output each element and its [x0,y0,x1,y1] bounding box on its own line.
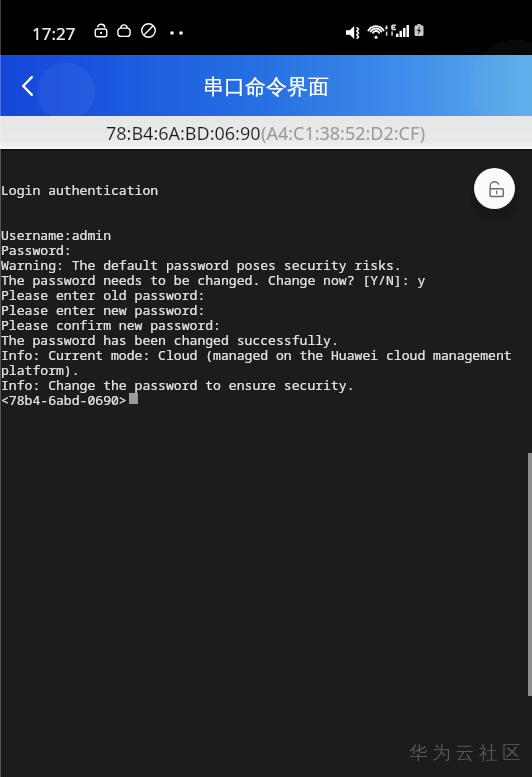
staticText: 17:27 [32,22,76,45]
button[interactable]: Back [4,62,52,110]
staticText: 串口命令界面 [203,74,329,100]
button[interactable]: Unlock [474,168,515,209]
staticText: (A4:C1:38:52:D2:CF) [261,121,426,146]
staticText: Login authentication Username:admin Pass… [1,181,512,408]
staticText: 华 为 云 社 区 [409,739,521,764]
staticText: 78:B4:6A:BD:06:90 [106,121,261,146]
